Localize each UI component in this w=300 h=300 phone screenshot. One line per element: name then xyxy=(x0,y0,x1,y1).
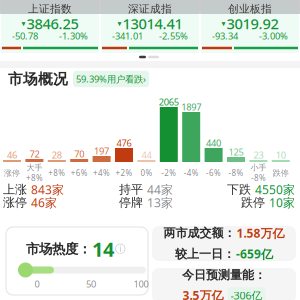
button[interactable]: 今日预测量能： xyxy=(152,268,296,300)
staticText: › xyxy=(143,73,146,85)
staticText: ▾ xyxy=(221,19,225,28)
staticText: -6% xyxy=(206,168,221,178)
staticText: 125 xyxy=(228,146,243,158)
staticText: 28 xyxy=(52,149,62,161)
staticText: 72 xyxy=(29,148,39,160)
staticText: 跌停 xyxy=(241,195,265,210)
staticText: -341.01 xyxy=(112,30,143,42)
staticText: 476 xyxy=(116,137,131,149)
button[interactable]: 上证指数 xyxy=(1,0,99,53)
staticText: 23 xyxy=(253,149,263,161)
staticText: 下跌 xyxy=(227,182,251,197)
staticText: -4% xyxy=(184,168,199,178)
staticText: 小手 xyxy=(250,163,266,173)
staticText: 3.5万亿 xyxy=(182,287,223,300)
staticText: -93.34 xyxy=(212,30,238,42)
staticText: 0% xyxy=(140,168,152,178)
staticText: 较上一日： xyxy=(175,247,235,261)
staticText: 大手 xyxy=(26,163,42,173)
button[interactable]: 创业板指 xyxy=(201,0,299,53)
staticText: -2% xyxy=(161,168,176,178)
staticText: 3019.92 xyxy=(226,14,278,33)
staticText: 50 xyxy=(86,278,96,290)
staticText: 持平 xyxy=(119,182,143,197)
staticText: 10 xyxy=(276,149,286,161)
staticText: 440 xyxy=(206,137,221,149)
staticText: -8% xyxy=(251,173,266,183)
staticText: 市场概况 xyxy=(8,70,68,88)
staticText: 涨停 xyxy=(4,168,20,178)
staticText: 市场热度： xyxy=(26,241,91,257)
button[interactable]: 两市成交额： xyxy=(152,226,296,261)
staticText: 0 xyxy=(34,278,39,290)
staticText: 2065 xyxy=(159,96,179,108)
staticText: ▾ xyxy=(117,19,121,28)
staticText: 1.58万亿 xyxy=(236,225,284,241)
staticText: 59.39%用户看跌 xyxy=(76,73,143,85)
staticText: -659亿 xyxy=(236,246,273,262)
staticText: +6% xyxy=(71,168,88,178)
staticText: 3846.25 xyxy=(26,14,78,33)
staticText: 14 xyxy=(92,236,114,262)
staticText: 10家 xyxy=(269,194,295,210)
staticText: +4% xyxy=(93,168,110,178)
staticText: 创业板指 xyxy=(228,2,272,15)
staticText: -2.55% xyxy=(159,30,188,42)
staticText: 上证指数 xyxy=(28,2,72,15)
staticText: 843家 xyxy=(31,181,64,197)
staticText: +8% xyxy=(48,168,65,178)
staticText: ▾ xyxy=(21,19,25,28)
staticText: -3.00% xyxy=(259,30,288,42)
staticText: 46家 xyxy=(31,194,57,210)
staticText: -306亿 xyxy=(230,288,262,300)
staticText: 1897 xyxy=(181,101,201,113)
staticText: 停牌 xyxy=(119,195,143,210)
staticText: +8% xyxy=(26,173,43,183)
button[interactable]: 深证成指 xyxy=(101,0,199,53)
staticText: 跌停 xyxy=(273,168,289,178)
staticText: 两市成交额： xyxy=(163,226,235,240)
staticText: -50.78 xyxy=(12,30,38,42)
staticText: 深证成指 xyxy=(128,2,172,15)
staticText: 44家 xyxy=(147,181,173,197)
staticText: 涨停 xyxy=(3,195,27,210)
staticText: 70 xyxy=(74,148,84,160)
staticText: +2% xyxy=(115,168,132,178)
button[interactable]: 59.39%用户看跌 xyxy=(73,71,149,87)
staticText: 13家 xyxy=(147,194,173,210)
staticText: 44 xyxy=(141,149,151,161)
staticText: 4550家 xyxy=(255,181,295,197)
staticText: 46 xyxy=(7,149,17,161)
staticText: ⓘ xyxy=(115,242,126,255)
staticText: 100 xyxy=(133,278,148,290)
staticText: 今日预测量能： xyxy=(182,267,266,282)
staticText: 13014.41 xyxy=(122,14,182,33)
staticText: -8% xyxy=(228,168,243,178)
button[interactable]: 市场热度： xyxy=(6,227,148,295)
staticText: 197 xyxy=(94,145,109,157)
staticText: 上涨 xyxy=(3,182,27,197)
staticText: -1.30% xyxy=(59,30,88,42)
